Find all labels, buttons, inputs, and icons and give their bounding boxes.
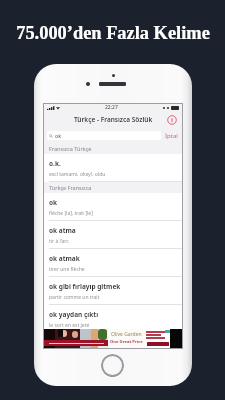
staticText: excl tamamı, okey!, oldu — [49, 171, 106, 178]
staticText: o.k. — [49, 159, 61, 168]
button[interactable]: ok — [44, 193, 182, 221]
button[interactable]: ok gibi fırlayıp gitmek — [44, 277, 182, 305]
button[interactable]: ok yaydan çıktı — [44, 305, 182, 329]
staticText: 75.000’den Fazla Kelime — [16, 23, 210, 43]
button[interactable]: o.k. — [44, 154, 182, 182]
staticText: İptal — [165, 132, 178, 140]
staticText: ok — [55, 132, 62, 139]
staticText: tirer une flèche — [49, 266, 85, 273]
button[interactable]: Advertisement — [44, 329, 182, 348]
staticText: ok — [49, 198, 58, 207]
staticText: One Great Price — [110, 339, 143, 345]
staticText: tir à l’arc — [49, 238, 69, 245]
staticText: ok yaydan çıktı — [49, 310, 99, 319]
staticText: ok atmak — [49, 254, 80, 263]
staticText: Türkçe Fransızca — [49, 184, 92, 191]
button[interactable]: İptal — [164, 132, 179, 140]
button[interactable]: Info — [167, 115, 177, 125]
button[interactable]: ok — [47, 131, 161, 140]
button[interactable]: ok atmak — [44, 249, 182, 277]
button[interactable]: Home — [101, 354, 124, 377]
staticText: Fransızca Türkçe — [49, 145, 92, 152]
staticText: ok atma — [49, 226, 76, 235]
staticText: ok gibi fırlayıp gitmek — [49, 282, 121, 291]
button[interactable]: ok atma — [44, 221, 182, 249]
staticText: 22:27 — [105, 104, 118, 111]
staticText: flèche [la], trait [le] — [49, 210, 93, 217]
staticText: le sort en est jeté — [49, 322, 90, 329]
staticText: Olive Garden — [111, 331, 142, 338]
staticText: partir comme un trait — [49, 294, 100, 301]
staticText: Türkçe - Fransızca Sözlük — [74, 115, 153, 124]
